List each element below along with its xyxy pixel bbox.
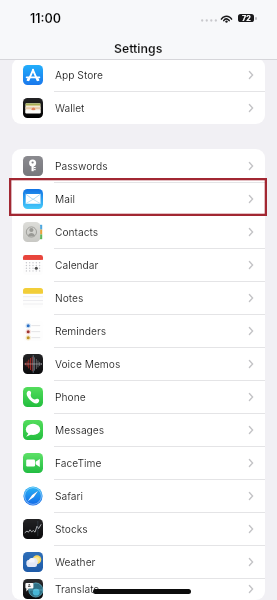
- button[interactable]: Notes: [12, 281, 265, 314]
- staticText: 11:00: [30, 11, 62, 26]
- button[interactable]: Voice Memos: [12, 347, 265, 380]
- staticText: Contacts: [55, 226, 99, 238]
- staticText: Voice Memos: [55, 358, 121, 370]
- staticText: Translate: [55, 583, 100, 595]
- button[interactable]: Stocks: [12, 512, 265, 545]
- button[interactable]: Safari: [12, 479, 265, 512]
- staticText: App Store: [55, 69, 103, 81]
- staticText: Reminders: [55, 325, 107, 337]
- staticText: Stocks: [55, 523, 88, 535]
- button[interactable]: App Store: [12, 58, 265, 91]
- staticText: Settings: [114, 41, 163, 56]
- staticText: Notes: [55, 292, 84, 304]
- staticText: Messages: [55, 424, 105, 436]
- button[interactable]: FaceTime: [12, 446, 265, 479]
- staticText: Calendar: [55, 259, 99, 271]
- button[interactable]: Phone: [12, 380, 265, 413]
- staticText: Wallet: [55, 102, 85, 114]
- staticText: Phone: [55, 391, 86, 403]
- staticText: FaceTime: [55, 457, 102, 469]
- button[interactable]: Mail: [12, 182, 265, 215]
- staticText: Passwords: [55, 160, 108, 172]
- button[interactable]: Weather: [12, 545, 265, 578]
- staticText: Mail: [55, 193, 75, 205]
- staticText: 72: [242, 14, 251, 22]
- button[interactable]: Wallet: [12, 91, 265, 124]
- button[interactable]: Messages: [12, 413, 265, 446]
- button[interactable]: Reminders: [12, 314, 265, 347]
- staticText: Weather: [55, 556, 96, 568]
- button[interactable]: Translate: [12, 578, 265, 600]
- staticText: Safari: [55, 490, 84, 502]
- button[interactable]: Contacts: [12, 215, 265, 248]
- button[interactable]: Passwords: [12, 149, 265, 182]
- button[interactable]: Calendar: [12, 248, 265, 281]
